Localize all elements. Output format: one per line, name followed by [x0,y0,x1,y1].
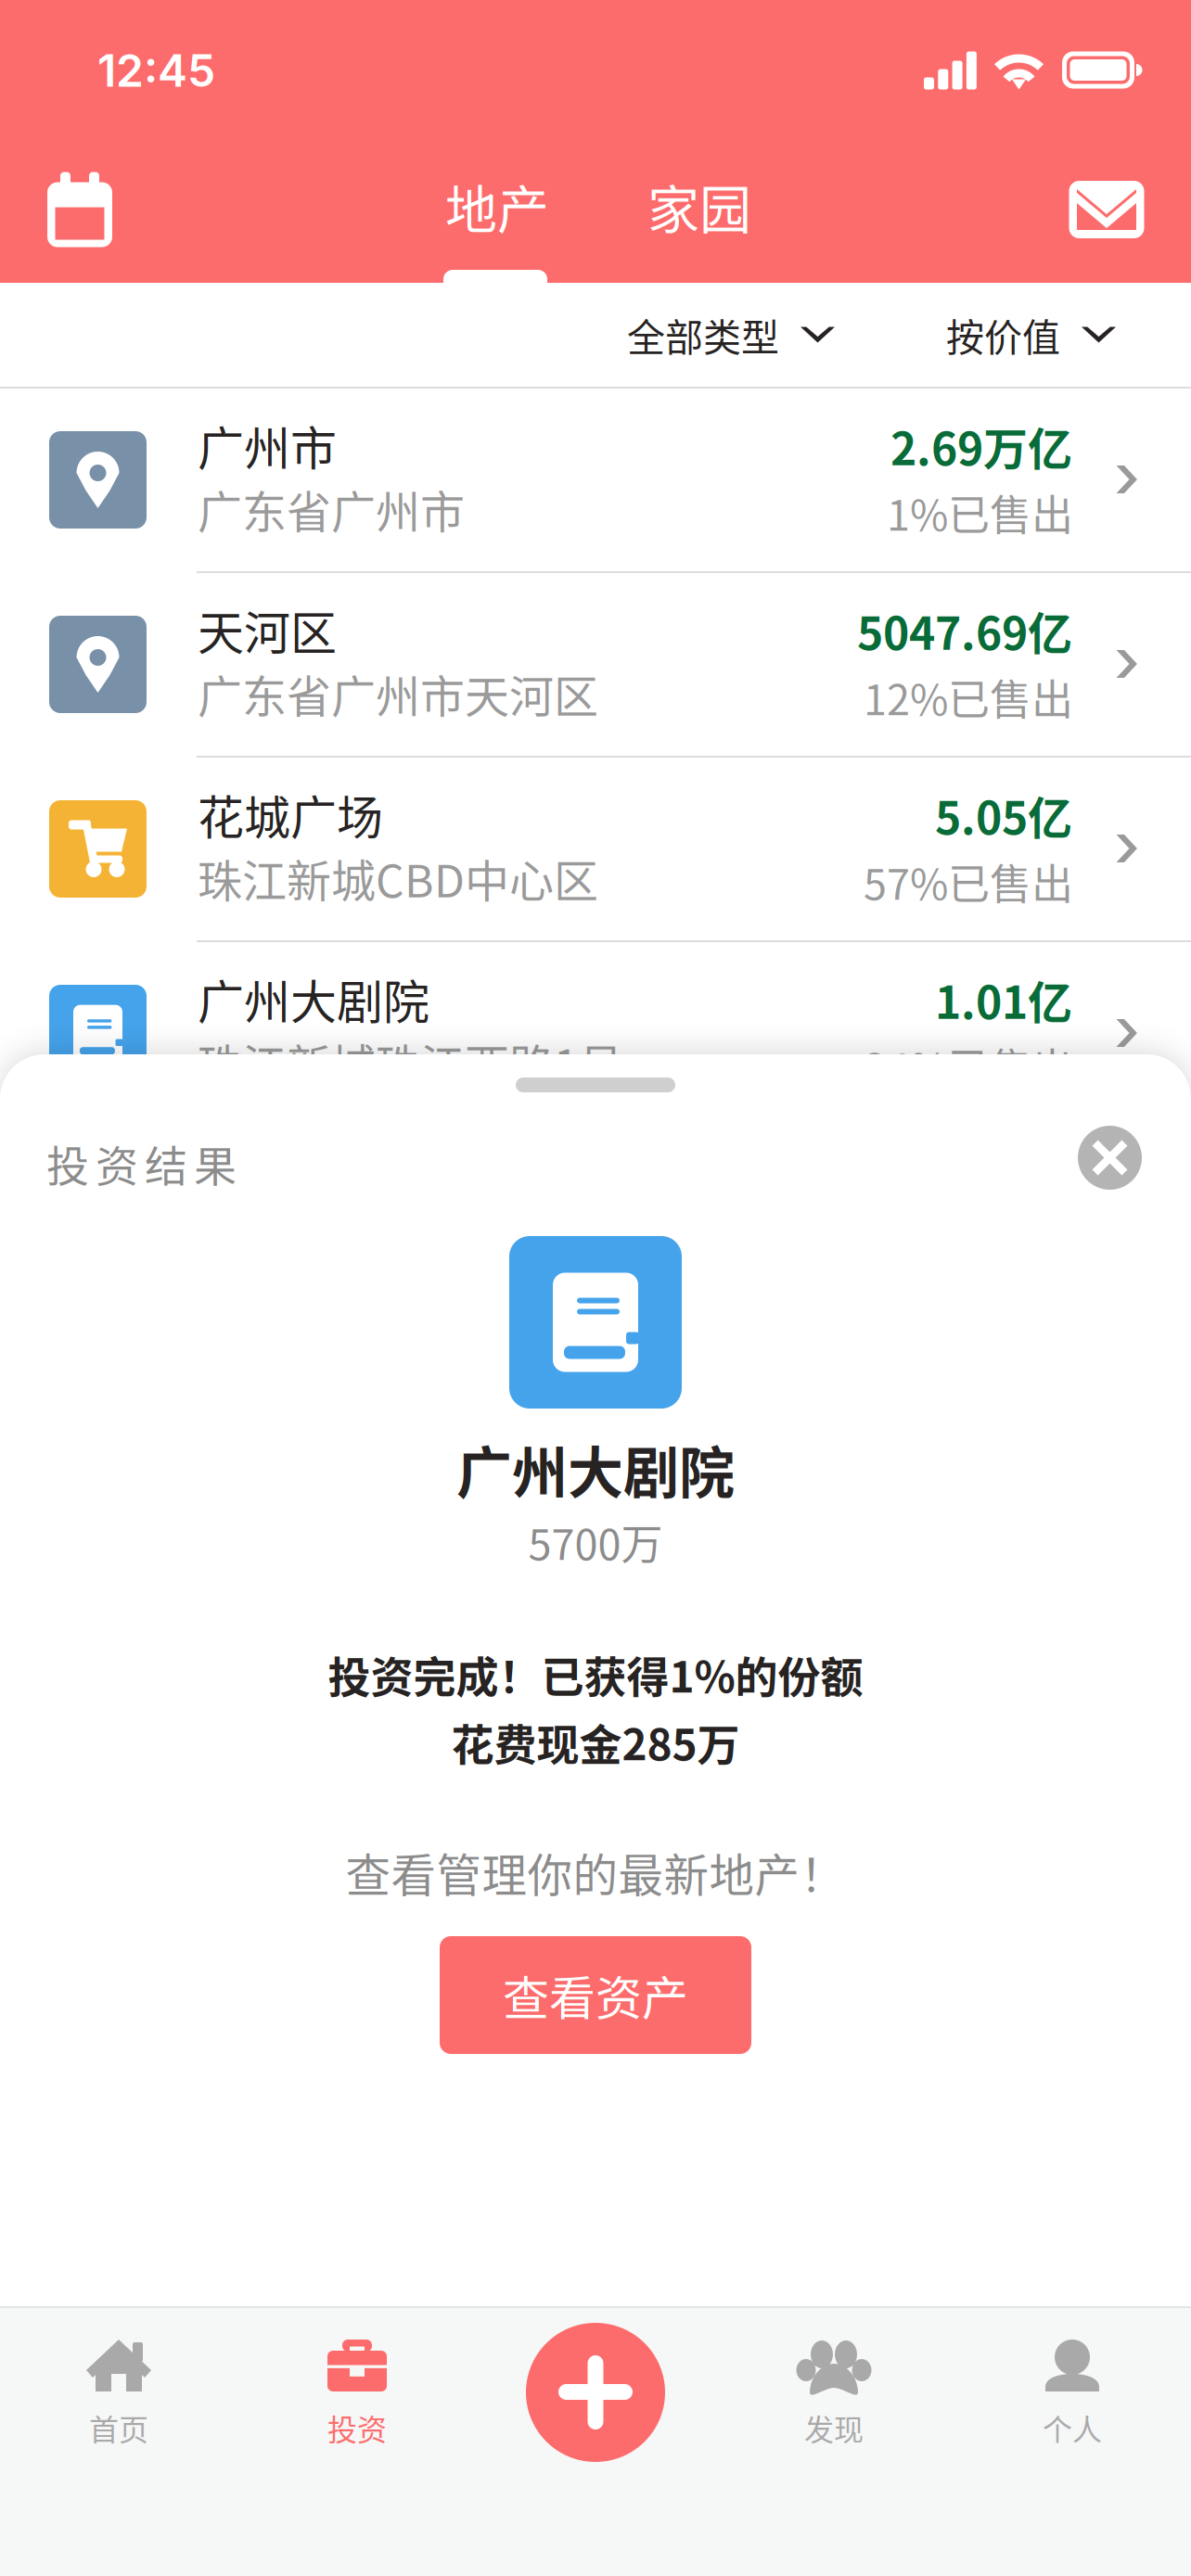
staticText: 个人 [1043,2406,1102,2449]
button[interactable]: 地产 [423,155,571,257]
staticText: 全部类型 [627,307,779,362]
staticText: 广州大剧院 [198,965,429,1032]
staticText: 2.69万亿 [890,414,1072,478]
staticText: 花费现金285万 [451,1711,740,1773]
staticText: 按价值 [946,307,1060,362]
staticText: 12%已售出 [864,667,1073,727]
staticText: 34%已售出 [864,1036,1073,1096]
button[interactable]: 发现 [715,2306,953,2576]
button[interactable]: 广州市 [0,389,1191,571]
staticText: 5047.69亿 [857,598,1072,663]
staticText: 5700万 [528,1511,663,1572]
staticText: 1.01亿 [935,967,1072,1032]
button[interactable]: 日历 [29,159,131,261]
staticText: 查看资产 [503,1961,688,2029]
button[interactable]: 按价值 [946,283,1116,387]
staticText: 广州大剧院 [456,1429,735,1510]
staticText: 花城广场 [198,781,383,848]
button[interactable]: 投资 [238,2306,476,2576]
button[interactable]: 个人 [953,2306,1191,2576]
staticText: 广东省广州市天河区 [198,661,598,726]
staticText: 投资结果 [46,1132,237,1194]
staticText: 家园 [647,168,751,244]
staticText: 地产 [445,168,549,244]
button[interactable]: 广州大剧院 [0,942,1191,1125]
button[interactable]: 首页 [0,2306,238,2576]
button[interactable]: 查看资产 [440,1936,751,2054]
button[interactable]: 天河区 [0,573,1191,756]
staticText: 1%已售出 [887,482,1073,543]
button[interactable]: 关闭 [1078,1126,1142,1190]
staticText: 57%已售出 [864,851,1073,912]
staticText: 珠江新城CBD中心区 [198,846,598,910]
button[interactable]: 消息 [1056,159,1158,261]
staticText: 发现 [804,2406,864,2449]
button[interactable]: 花城广场 [0,758,1191,940]
staticText: 12:45 [97,44,215,97]
staticText: 查看管理你的最新地产！ [346,1840,845,1905]
staticText: 天河区 [198,596,337,663]
staticText: 首页 [89,2406,148,2449]
button[interactable]: 家园 [625,155,774,257]
staticText: 广州市 [198,412,337,479]
staticText: 投资完成！已获得1%的份额 [328,1643,863,1705]
staticText: 投资 [327,2406,387,2449]
button[interactable]: 新建 [476,2306,715,2576]
button[interactable]: 全部类型 [627,283,835,387]
staticText: 5.05亿 [935,783,1072,847]
staticText: 广东省广州市 [198,477,465,541]
staticText: 珠江新城珠江西路1号 [198,1030,623,1095]
